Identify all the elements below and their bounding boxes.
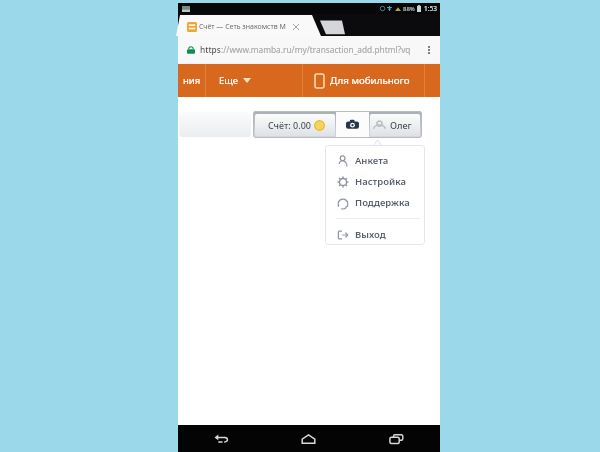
button[interactable]: More options bbox=[423, 40, 435, 60]
staticText: Настройка bbox=[355, 175, 407, 188]
button[interactable]: Настройка bbox=[325, 171, 425, 192]
staticText: Для мобильного bbox=[330, 74, 410, 87]
button[interactable]: Счёт — Сеть знакомств M bbox=[187, 18, 317, 35]
staticText: Еще bbox=[219, 74, 239, 87]
button[interactable]: Recent apps bbox=[352, 425, 440, 452]
button[interactable]: Back bbox=[178, 425, 265, 452]
staticText: 88% bbox=[403, 5, 415, 13]
staticText: 1:53 bbox=[424, 4, 437, 13]
button[interactable]: Счёт: 0.00 bbox=[255, 114, 335, 136]
button[interactable]: Для мобильного bbox=[303, 64, 440, 97]
button[interactable]: Выход bbox=[325, 224, 425, 245]
staticText: Счёт — Сеть знакомств M bbox=[199, 22, 286, 32]
button[interactable]: Home bbox=[265, 425, 352, 452]
staticText: Анкета bbox=[355, 154, 389, 167]
button[interactable]: Анкета bbox=[325, 150, 425, 171]
button[interactable]: Еще bbox=[206, 64, 302, 97]
button[interactable]: Поддержка bbox=[325, 192, 425, 213]
staticText: Олег bbox=[390, 119, 412, 132]
staticText: Выход bbox=[355, 228, 386, 241]
staticText: Счёт: 0.00 bbox=[268, 119, 311, 131]
staticText: https bbox=[200, 44, 221, 55]
button[interactable]: ния bbox=[178, 64, 205, 97]
staticText: ния bbox=[183, 74, 201, 87]
staticText: Поддержка bbox=[355, 196, 410, 209]
button[interactable]: Close tab bbox=[293, 24, 299, 30]
button[interactable]: Camera bbox=[336, 111, 369, 138]
staticText: ://www.mamba.ru/my/transaction_add.phtml… bbox=[221, 44, 411, 55]
button[interactable]: Олег bbox=[370, 114, 420, 136]
